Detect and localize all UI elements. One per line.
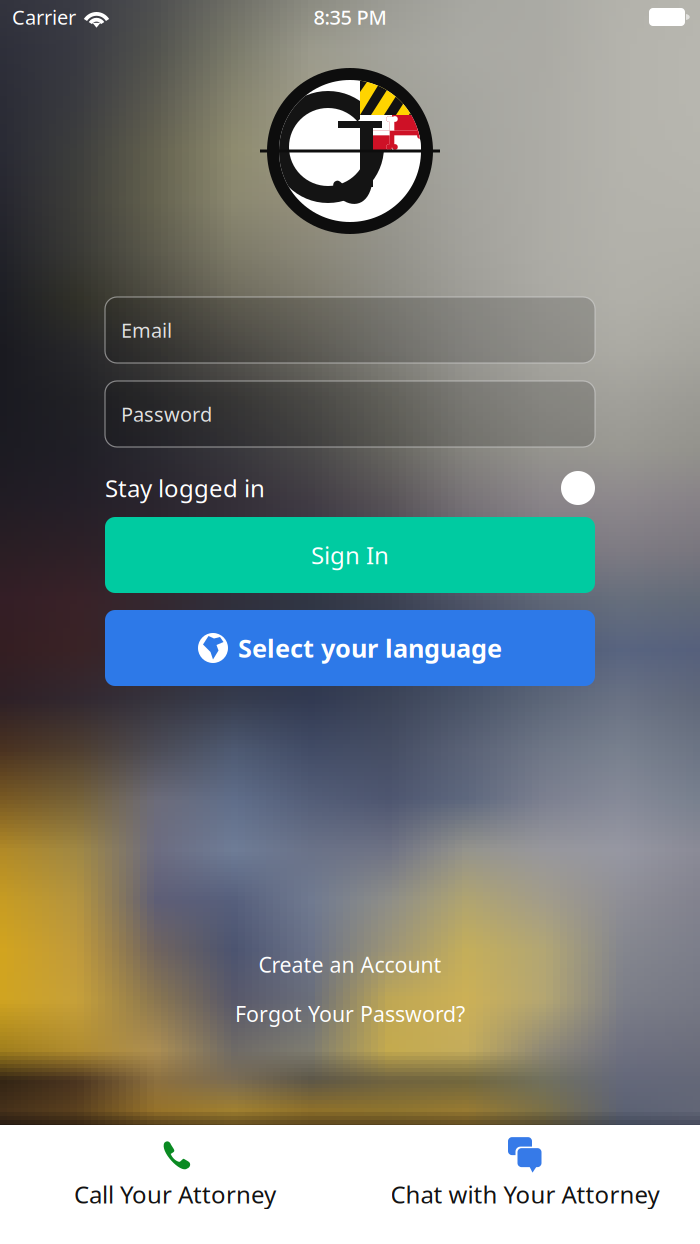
button[interactable]: Sign In <box>105 517 595 593</box>
button[interactable]: Select your language <box>105 610 595 686</box>
button[interactable]: Stay logged in <box>561 471 595 505</box>
staticText: Chat with Your Attorney <box>390 1178 659 1210</box>
staticText: Carrier <box>12 4 76 30</box>
button[interactable]: Create an Account <box>258 950 441 979</box>
button[interactable]: Call Your Attorney <box>0 1125 350 1244</box>
staticText: Password <box>121 401 212 427</box>
staticText: 8:35 PM <box>313 4 386 30</box>
button[interactable]: Chat with Your Attorney <box>350 1125 700 1244</box>
staticText: Email <box>121 317 172 343</box>
staticText: Stay logged in <box>105 472 265 504</box>
staticText: Call Your Attorney <box>74 1178 276 1210</box>
staticText: Select your language <box>238 631 502 665</box>
staticText: Forgot Your Password? <box>235 1000 465 1028</box>
staticText: Create an Account <box>258 950 441 979</box>
staticText: Sign In <box>311 539 389 571</box>
button[interactable]: Forgot Your Password? <box>235 1000 465 1028</box>
